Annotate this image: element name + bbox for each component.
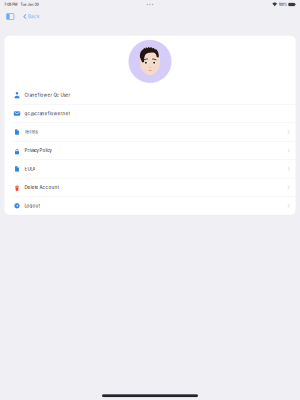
staticText: Craneflower Qc User (24, 92, 70, 98)
staticText: Terms (24, 129, 37, 135)
staticText: Delete Account (24, 185, 58, 190)
button[interactable]: Back (16, 11, 43, 22)
button[interactable]: Show Sidebar (4, 10, 16, 23)
button[interactable]: Privacy Policy (4, 141, 295, 159)
button[interactable]: Logout (4, 197, 295, 215)
staticText: 100% (279, 2, 287, 7)
staticText: 7:08 PM (4, 2, 17, 7)
button[interactable]: qc@craneflower.net (4, 105, 295, 123)
staticText: qc@craneflower.net (24, 111, 69, 116)
staticText: Privacy Policy (24, 148, 51, 153)
button[interactable]: Terms (4, 123, 295, 141)
staticText: EULA (24, 166, 35, 171)
button[interactable]: EULA (4, 160, 295, 178)
staticText: Tue Jan 30 (20, 2, 38, 7)
staticText: Back (28, 14, 40, 19)
button[interactable]: Delete Account (4, 178, 295, 196)
button[interactable]: Craneflower Qc User (4, 86, 295, 104)
staticText: Logout (24, 203, 39, 208)
